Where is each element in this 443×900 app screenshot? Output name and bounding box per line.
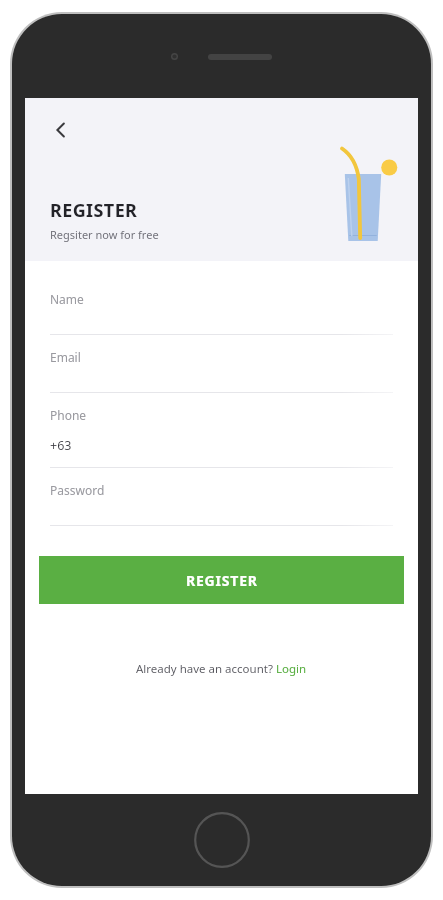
staticText: +63 <box>50 437 72 454</box>
staticText: Email <box>50 349 81 365</box>
button[interactable]: Email <box>25 335 418 393</box>
button[interactable]: Back <box>39 108 83 152</box>
staticText: Name <box>50 291 84 307</box>
button[interactable]: Name <box>25 277 418 335</box>
button[interactable]: Password <box>25 468 418 526</box>
staticText: REGISTER <box>50 198 138 223</box>
staticText: Password <box>50 482 105 498</box>
button[interactable]: Phone <box>25 393 418 468</box>
staticText: Already have an account? Login <box>136 661 307 677</box>
staticText: Regsiter now for free <box>50 227 159 242</box>
button[interactable]: REGISTER <box>39 556 404 604</box>
staticText: REGISTER <box>186 571 258 590</box>
staticText: Phone <box>50 407 87 423</box>
button[interactable]: Already have an account? Login <box>25 652 418 686</box>
